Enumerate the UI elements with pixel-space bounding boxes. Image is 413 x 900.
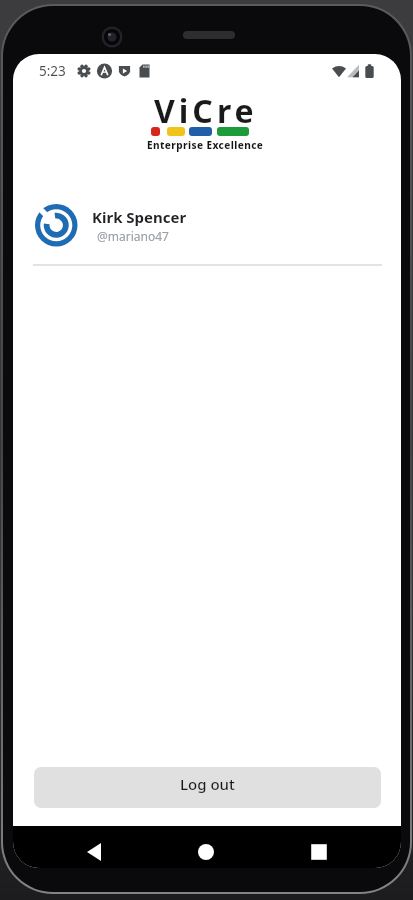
staticText: ViCre: [154, 89, 258, 133]
button[interactable]: Kirk Spencer: [35, 204, 365, 247]
button[interactable]: [305, 838, 333, 866]
staticText: Log out: [180, 774, 235, 794]
staticText: Enterprise Excellence: [147, 138, 264, 152]
button[interactable]: [192, 838, 220, 866]
button[interactable]: Log out: [34, 767, 381, 808]
staticText: @mariano47: [97, 228, 169, 244]
staticText: Kirk Spencer: [92, 207, 187, 227]
button[interactable]: [80, 838, 108, 866]
staticText: 5:23: [39, 62, 66, 80]
